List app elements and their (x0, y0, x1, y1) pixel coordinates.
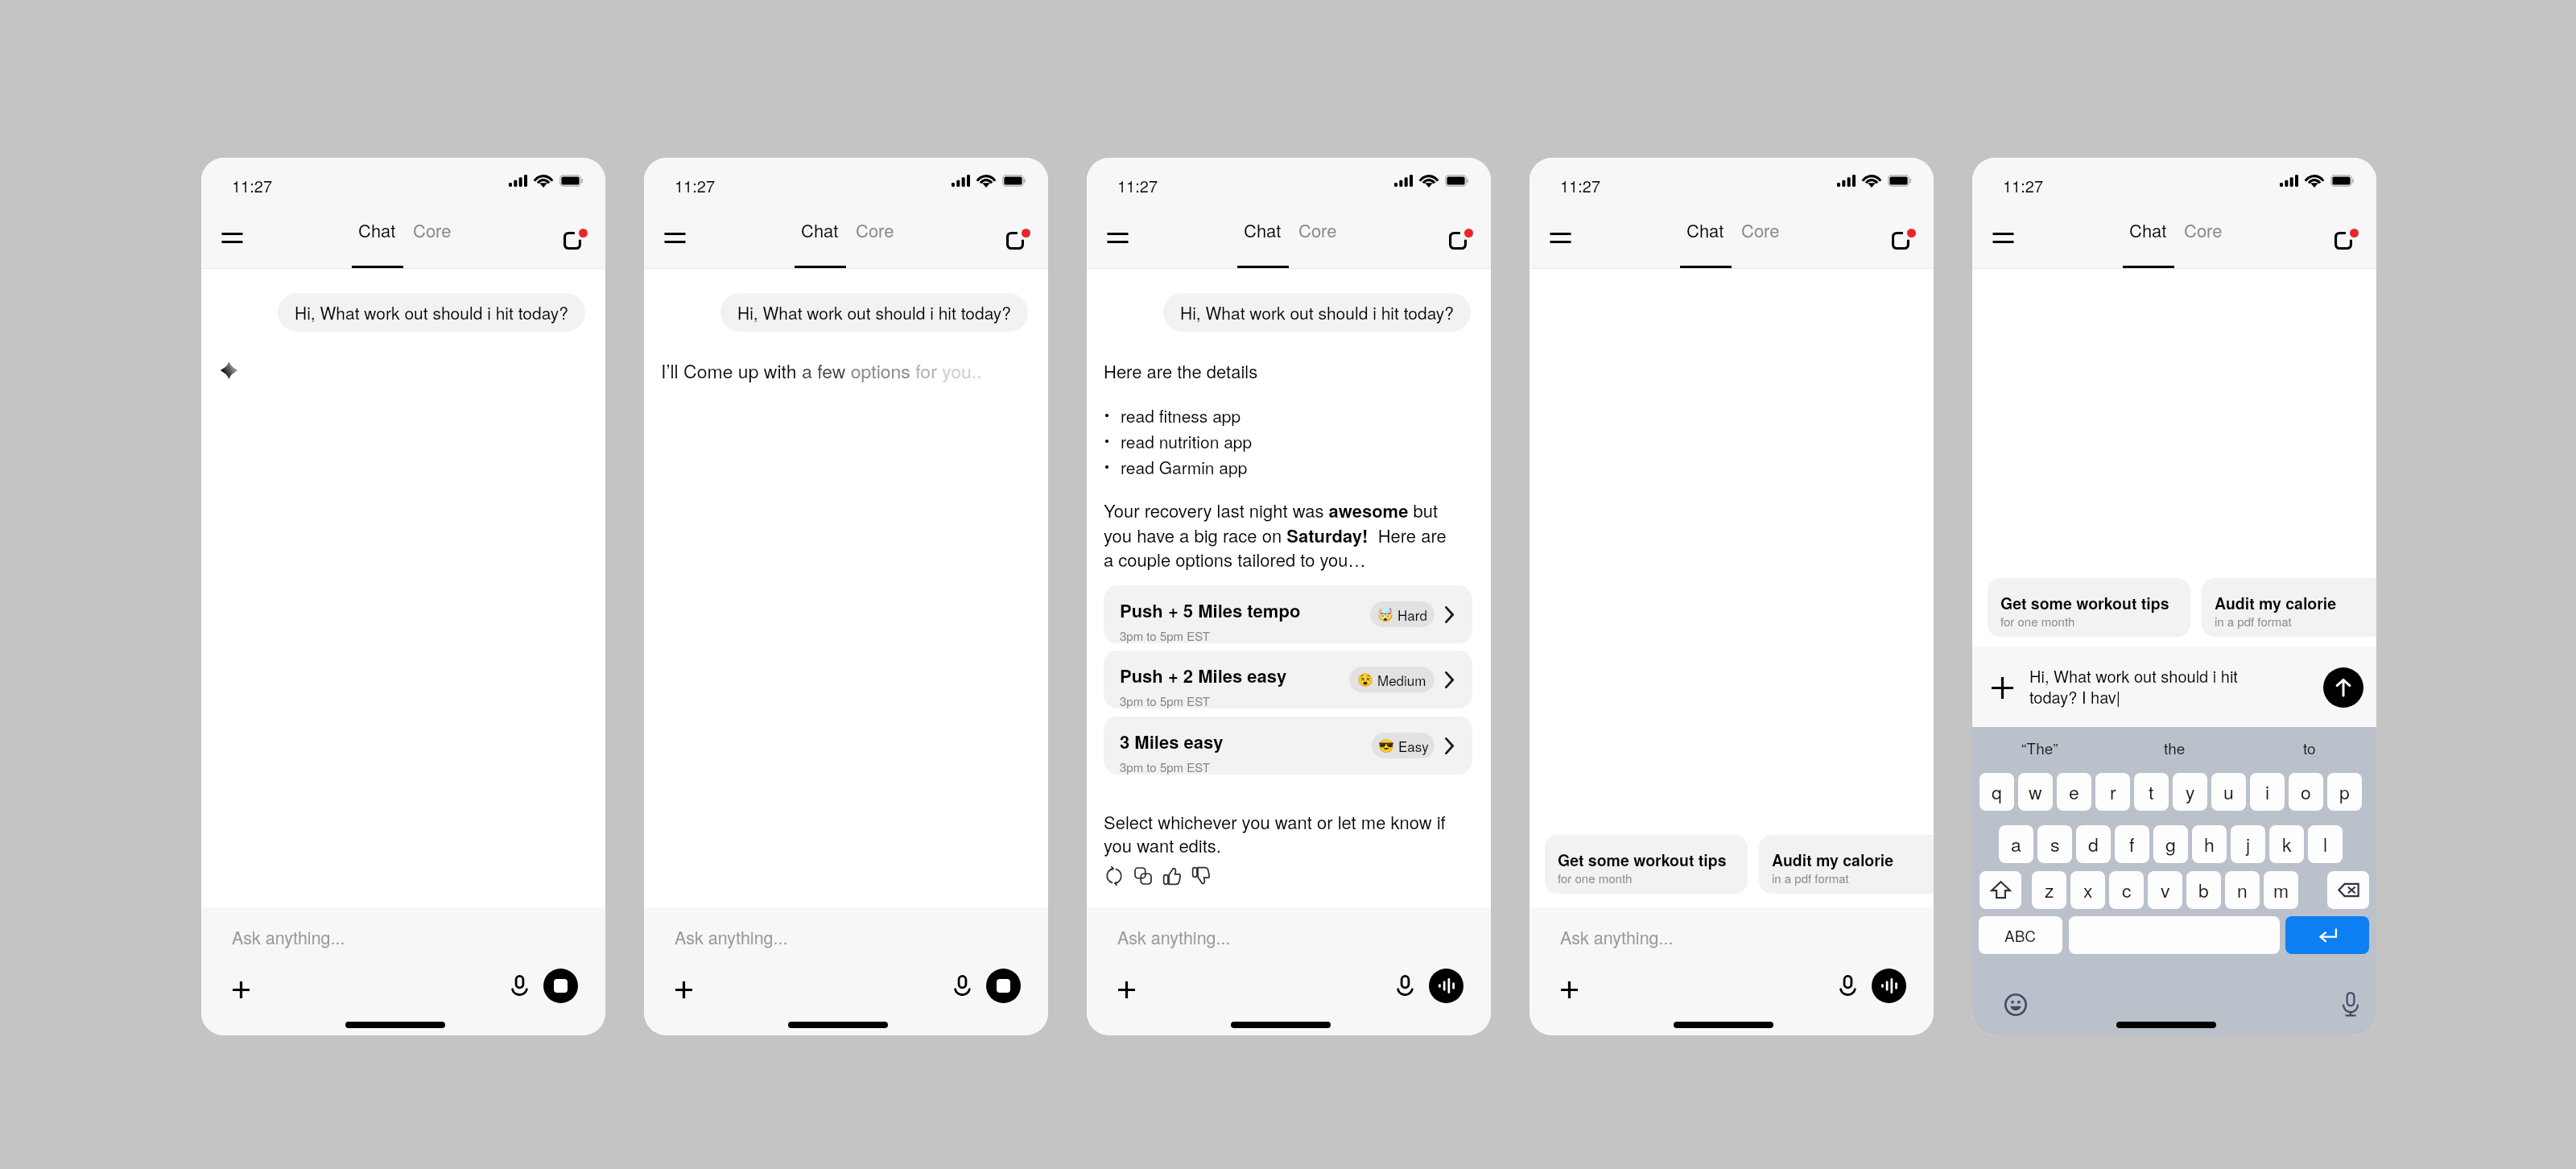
staticText: Ask anything... (1560, 924, 1674, 949)
button[interactable]: k (2269, 825, 2304, 863)
button[interactable]: Audit my calorie (2202, 578, 2376, 637)
staticText: read Garmin app (1121, 455, 1248, 479)
button[interactable] (1979, 871, 2021, 909)
staticText: 11:27 (675, 174, 716, 197)
button[interactable]: Voice input (1829, 966, 1866, 1003)
button[interactable]: Add attachment (665, 971, 702, 1008)
button[interactable]: o (2289, 773, 2323, 811)
button[interactable]: Hi, What work out should i hit today? (278, 293, 585, 332)
button[interactable]: u (2211, 773, 2246, 811)
button[interactable]: t (2134, 773, 2169, 811)
button[interactable]: Core (2176, 214, 2231, 246)
button[interactable]: Push + 2 Miles easy (1104, 651, 1472, 708)
staticText: for one month (2000, 613, 2075, 630)
button[interactable]: Menu (213, 219, 250, 256)
staticText: e (2069, 779, 2079, 805)
staticText: 11:27 (1117, 174, 1158, 197)
button[interactable]: Core (848, 214, 902, 246)
button[interactable]: Chat (1678, 214, 1732, 246)
button[interactable]: 3 Miles easy (1104, 717, 1472, 775)
button[interactable]: Get some workout tips (1545, 835, 1748, 894)
button[interactable]: Hi, What work out should i hit today? (720, 293, 1028, 332)
button[interactable]: j (2231, 825, 2265, 863)
staticText: Push + 2 Miles easy (1120, 663, 1287, 688)
button[interactable]: Get some workout tips (1988, 578, 2190, 637)
button[interactable]: d (2076, 825, 2111, 863)
button[interactable]: m (2264, 871, 2298, 909)
button[interactable]: New chat (1882, 222, 1919, 259)
button[interactable]: v (2148, 871, 2182, 909)
button[interactable]: Chat (792, 214, 847, 246)
button[interactable]: Voice input (1386, 966, 1423, 1003)
button[interactable]: Menu (1984, 219, 2021, 256)
button[interactable]: x (2070, 871, 2105, 909)
button[interactable]: to (2242, 727, 2376, 767)
button[interactable]: e (2057, 773, 2091, 811)
button[interactable]: Chat (1235, 214, 1290, 246)
button[interactable]: c (2109, 871, 2144, 909)
button[interactable]: Like (1158, 861, 1187, 890)
button[interactable]: l (2308, 825, 2343, 863)
button[interactable]: New chat (1439, 222, 1476, 259)
button[interactable]: Add attachment (222, 971, 259, 1008)
button[interactable]: Send (2323, 667, 2363, 708)
button[interactable]: z (2032, 871, 2066, 909)
button[interactable]: New chat (997, 222, 1034, 259)
staticText: s (2050, 831, 2060, 857)
staticText: 3pm to 5pm EST (1120, 758, 1210, 775)
button[interactable]: i (2250, 773, 2285, 811)
button[interactable]: f (2115, 825, 2149, 863)
staticText: ABC (2004, 924, 2037, 946)
button[interactable]: Emoji (2000, 989, 2032, 1021)
staticText: Hi, What work out should i hit today? (737, 300, 1011, 324)
button[interactable]: Core (1733, 214, 1788, 246)
button[interactable]: n (2225, 871, 2260, 909)
button[interactable]: Regenerate (1100, 861, 1129, 890)
button[interactable]: g (2153, 825, 2188, 863)
staticText: Your recovery last night was awesome but… (1104, 498, 1448, 572)
button[interactable]: Space (2069, 916, 2280, 954)
button[interactable]: ABC (1979, 916, 2062, 954)
button[interactable]: r (2095, 773, 2130, 811)
button[interactable]: Add attachment (1550, 971, 1587, 1008)
button[interactable]: Core (1290, 214, 1345, 246)
button[interactable]: Chat (349, 214, 404, 246)
button[interactable]: Add attachment (1984, 670, 2020, 705)
staticText: 3 Miles easy (1120, 729, 1224, 754)
button[interactable]: Chat (2120, 214, 2175, 246)
button[interactable]: Voice mode (1429, 969, 1463, 1003)
button[interactable]: New chat (2325, 222, 2362, 259)
button[interactable]: Dislike (1187, 861, 1216, 890)
button[interactable]: b (2186, 871, 2221, 909)
button[interactable]: s (2037, 825, 2072, 863)
staticText: d (2088, 831, 2099, 857)
staticText: Core (1298, 217, 1337, 243)
button[interactable]: Return (2285, 916, 2369, 954)
button[interactable]: Stop (543, 969, 578, 1003)
button[interactable]: Audit my calorie (1759, 835, 1934, 894)
button[interactable]: Menu (1099, 219, 1136, 256)
button[interactable]: Core (405, 214, 460, 246)
button[interactable]: Dictate (2334, 988, 2367, 1020)
button[interactable]: a (1999, 825, 2033, 863)
button[interactable]: Voice input (943, 966, 980, 1003)
button[interactable] (2327, 871, 2369, 909)
button[interactable]: the (2107, 727, 2242, 767)
button[interactable]: Menu (1542, 219, 1579, 256)
button[interactable]: Push + 5 Miles tempo (1104, 585, 1472, 643)
button[interactable]: “The” (1972, 727, 2107, 767)
button[interactable]: Add attachment (1108, 971, 1145, 1008)
button[interactable]: Menu (656, 219, 693, 256)
button[interactable]: p (2327, 773, 2362, 811)
button[interactable]: Voice mode (1872, 969, 1906, 1003)
staticText: t (2149, 779, 2154, 805)
button[interactable]: Hi, What work out should i hit today? (1163, 293, 1471, 332)
button[interactable]: Stop (986, 969, 1021, 1003)
button[interactable]: q (1979, 773, 2014, 811)
button[interactable]: w (2018, 773, 2053, 811)
button[interactable]: h (2192, 825, 2227, 863)
button[interactable]: Voice input (501, 966, 538, 1003)
button[interactable]: Copy (1129, 861, 1158, 890)
button[interactable]: New chat (554, 222, 591, 259)
button[interactable]: y (2173, 773, 2207, 811)
